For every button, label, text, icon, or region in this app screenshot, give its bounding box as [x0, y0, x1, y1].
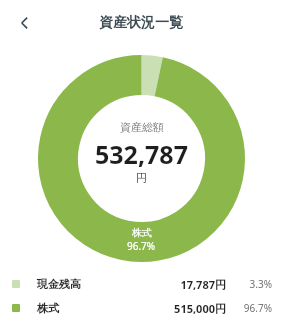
staticText: 515,000円	[158, 301, 226, 316]
staticText: 3.3%	[238, 277, 272, 291]
staticText: 17,787円	[158, 277, 226, 292]
staticText: 96.7%	[238, 301, 272, 315]
staticText: 株式	[37, 301, 59, 315]
staticText: 96.7%	[127, 239, 156, 253]
staticText: 現金残高	[37, 277, 81, 291]
staticText: 資産総額	[120, 120, 164, 134]
staticText: 532,787	[95, 137, 188, 171]
button[interactable]: 株式	[0, 296, 282, 320]
staticText: 株式	[132, 226, 152, 239]
button[interactable]: Back	[6, 4, 44, 42]
staticText: 円	[136, 171, 147, 185]
staticText: 資産状況一覧	[99, 14, 183, 32]
button[interactable]: 現金残高	[0, 272, 282, 296]
